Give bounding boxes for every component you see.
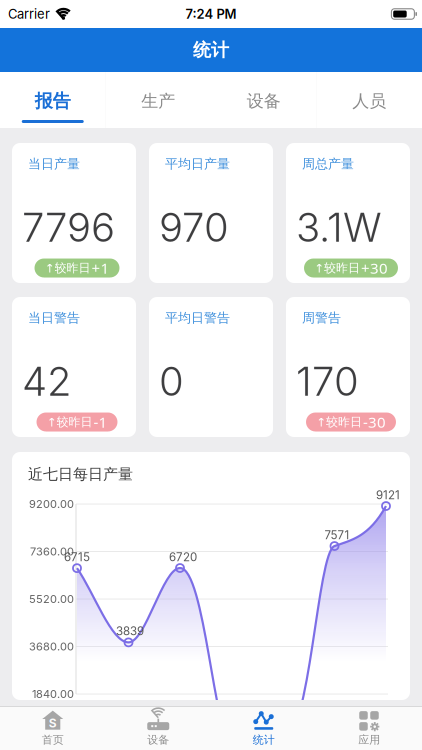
staticText: 近七日每日产量 bbox=[28, 465, 133, 483]
staticText: 170 bbox=[296, 357, 359, 405]
staticText: 首页 bbox=[42, 733, 64, 747]
staticText: Carrier bbox=[8, 6, 50, 22]
staticText: 当日产量 bbox=[28, 156, 80, 172]
staticText: 9200.00 bbox=[29, 497, 74, 511]
staticText: 6715 bbox=[64, 550, 90, 564]
staticText: ↑较昨日 bbox=[314, 261, 360, 275]
staticText: 6720 bbox=[169, 550, 197, 564]
staticText: 7796 bbox=[22, 203, 115, 251]
staticText: 设备 bbox=[247, 91, 281, 111]
staticText: ↑较昨日 bbox=[316, 415, 362, 429]
staticText: 统计 bbox=[253, 733, 275, 747]
button[interactable]: 设备 bbox=[211, 72, 316, 128]
staticText: 报告 bbox=[35, 90, 71, 112]
staticText: 生产 bbox=[141, 91, 175, 111]
staticText: 7:24 PM bbox=[185, 6, 236, 22]
staticText: 平均日产量 bbox=[165, 156, 230, 172]
staticText: 5520.00 bbox=[29, 592, 74, 606]
staticText: +1 bbox=[91, 258, 109, 278]
staticText: 9121 bbox=[376, 488, 400, 502]
staticText: ↑较昨日 bbox=[46, 415, 92, 429]
staticText: ↑较昨日 bbox=[44, 261, 90, 275]
staticText: 周总产量 bbox=[302, 156, 354, 172]
staticText: 3839 bbox=[116, 624, 144, 638]
staticText: 7571 bbox=[324, 528, 349, 542]
staticText: 统计 bbox=[193, 39, 229, 61]
button[interactable]: 设备 bbox=[105, 706, 211, 750]
button[interactable]: 统计 bbox=[211, 706, 316, 750]
staticText: 当日警告 bbox=[28, 310, 80, 326]
staticText: 3.1W bbox=[296, 203, 382, 251]
staticText: -30 bbox=[363, 412, 386, 432]
staticText: +30 bbox=[361, 258, 388, 278]
button[interactable]: 人员 bbox=[316, 72, 422, 128]
staticText: 3680.00 bbox=[29, 640, 74, 653]
staticText: 7360.00 bbox=[30, 545, 74, 558]
staticText: 970 bbox=[159, 203, 229, 251]
staticText: 0 bbox=[159, 357, 184, 405]
staticText: 42 bbox=[22, 357, 72, 405]
staticText: 周警告 bbox=[302, 310, 341, 326]
staticText: 设备 bbox=[147, 733, 169, 747]
staticText: S bbox=[49, 716, 57, 730]
button[interactable]: 应用 bbox=[316, 706, 422, 750]
button[interactable]: 报告 bbox=[0, 72, 105, 128]
button[interactable]: S bbox=[0, 706, 105, 750]
staticText: 平均日警告 bbox=[165, 310, 230, 326]
staticText: 应用 bbox=[358, 733, 380, 747]
staticText: -1 bbox=[93, 412, 107, 432]
staticText: 1840.00 bbox=[32, 687, 74, 701]
staticText: 人员 bbox=[352, 91, 386, 111]
button[interactable]: 生产 bbox=[105, 72, 211, 128]
